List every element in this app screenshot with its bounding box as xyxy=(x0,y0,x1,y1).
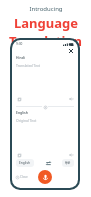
button[interactable]: Swap languages xyxy=(42,104,48,110)
staticText: Translation xyxy=(9,32,82,50)
button[interactable]: Copy text xyxy=(16,152,22,158)
button[interactable]: English xyxy=(16,159,34,167)
staticText: 9:30 xyxy=(16,42,23,46)
staticText: English xyxy=(16,110,28,115)
staticText: Introducing xyxy=(29,5,63,13)
staticText: हिंदी xyxy=(65,161,71,165)
button[interactable]: Close xyxy=(16,175,28,179)
button[interactable]: Close xyxy=(67,47,75,55)
staticText: Hindi xyxy=(16,55,25,60)
staticText: English xyxy=(19,161,31,165)
button[interactable]: Listen xyxy=(68,96,74,102)
button[interactable]: Record voice xyxy=(38,170,52,184)
button[interactable]: हिंदी xyxy=(62,159,74,167)
staticText: Translated Text xyxy=(16,63,41,68)
staticText: Language xyxy=(14,14,78,32)
button[interactable]: Switch languages xyxy=(44,159,52,167)
staticText: Close xyxy=(20,175,28,179)
button[interactable]: Copy text xyxy=(16,96,22,102)
button[interactable]: Listen xyxy=(68,152,74,158)
staticText: Original Text xyxy=(16,118,37,123)
